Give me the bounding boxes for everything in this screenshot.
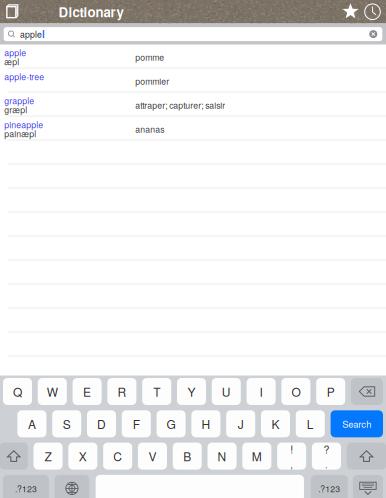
button[interactable]: W: [38, 378, 67, 405]
staticText: J: [238, 415, 244, 432]
staticText: P: [327, 383, 335, 400]
button[interactable]: Y: [177, 378, 206, 405]
staticText: V: [148, 447, 156, 465]
button[interactable]: Z: [33, 443, 62, 470]
staticText: pineapple: [4, 118, 43, 131]
staticText: E: [83, 383, 91, 400]
staticText: .?123: [15, 482, 37, 495]
button[interactable]: grapple: [0, 92, 386, 116]
staticText: apple: [20, 28, 42, 40]
button[interactable]: R: [107, 378, 136, 405]
button[interactable]: H: [191, 410, 220, 437]
staticText: ananas: [135, 123, 164, 135]
staticText: Q: [13, 383, 22, 400]
button[interactable]: X: [68, 443, 97, 470]
staticText: T: [153, 383, 160, 400]
button[interactable]: K: [261, 410, 290, 437]
button[interactable]: E: [73, 378, 102, 405]
button[interactable]: Clear search: [367, 28, 379, 40]
staticText: D: [97, 415, 106, 432]
staticText: pomme: [135, 51, 164, 63]
button[interactable]: apple: [0, 45, 386, 68]
button[interactable]: History: [359, 0, 386, 23]
staticText: grapple: [4, 94, 34, 107]
button[interactable]: ?: [312, 443, 341, 470]
button[interactable]: M: [242, 443, 271, 470]
button[interactable]: Delete: [351, 378, 383, 405]
staticText: Search: [342, 417, 371, 430]
staticText: pommier: [135, 75, 169, 87]
staticText: græpl: [4, 103, 27, 116]
staticText: H: [201, 415, 210, 432]
staticText: R: [117, 383, 126, 400]
button[interactable]: N: [208, 443, 237, 470]
staticText: M: [252, 447, 262, 465]
staticText: C: [113, 447, 122, 465]
button[interactable]: apple-tree: [0, 68, 386, 92]
staticText: U: [222, 383, 231, 400]
button[interactable]: T: [142, 378, 171, 405]
staticText: L: [307, 415, 314, 432]
staticText: apple-tree: [4, 70, 44, 83]
button[interactable]: B: [173, 443, 202, 470]
staticText: æpl: [4, 55, 19, 68]
button[interactable]: Hide keyboard: [353, 475, 383, 498]
button[interactable]: Dictionary: [24, 0, 123, 23]
staticText: Y: [187, 383, 195, 400]
button[interactable]: J: [226, 410, 255, 437]
button[interactable]: U: [212, 378, 241, 405]
button[interactable]: Search: [331, 410, 383, 437]
staticText: .?123: [318, 482, 340, 495]
staticText: O: [291, 383, 300, 400]
button[interactable]: F: [122, 410, 151, 437]
staticText: K: [271, 415, 279, 432]
staticText: .: [325, 458, 328, 471]
staticText: Dictionary: [58, 2, 123, 21]
button[interactable]: P: [316, 378, 345, 405]
staticText: Z: [44, 447, 51, 465]
staticText: G: [167, 415, 176, 432]
staticText: B: [183, 447, 191, 465]
staticText: I: [260, 383, 263, 400]
button[interactable]: Q: [3, 378, 32, 405]
button[interactable]: .?123: [3, 475, 49, 498]
staticText: painæpl: [4, 127, 36, 140]
button[interactable]: A: [17, 410, 46, 437]
staticText: attraper; capturer; saisir: [135, 99, 225, 111]
button[interactable]: Shift: [0, 443, 28, 470]
staticText: apple: [4, 46, 26, 59]
staticText: !: [290, 441, 293, 457]
button[interactable]: S: [52, 410, 81, 437]
button[interactable]: Next keyboard: [55, 475, 89, 498]
staticText: N: [218, 447, 227, 465]
button[interactable]: I: [247, 378, 276, 405]
staticText: A: [28, 415, 36, 432]
staticText: ,: [290, 458, 293, 471]
staticText: W: [47, 383, 58, 400]
staticText: X: [79, 447, 87, 465]
staticText: ?: [323, 441, 329, 457]
button[interactable]: V: [138, 443, 167, 470]
button[interactable]: .?123: [311, 475, 348, 498]
button[interactable]: L: [296, 410, 325, 437]
staticText: S: [63, 415, 71, 432]
button[interactable]: G: [157, 410, 186, 437]
button[interactable]: O: [281, 378, 310, 405]
button[interactable]: Favorites: [330, 0, 359, 23]
button[interactable]: Shift: [347, 443, 386, 470]
button[interactable]: D: [87, 410, 116, 437]
button[interactable]: Dictionaries: [0, 0, 24, 23]
staticText: F: [133, 415, 140, 432]
button[interactable]: pineapple: [0, 116, 386, 140]
button[interactable]: !: [277, 443, 306, 470]
button[interactable]: C: [103, 443, 132, 470]
